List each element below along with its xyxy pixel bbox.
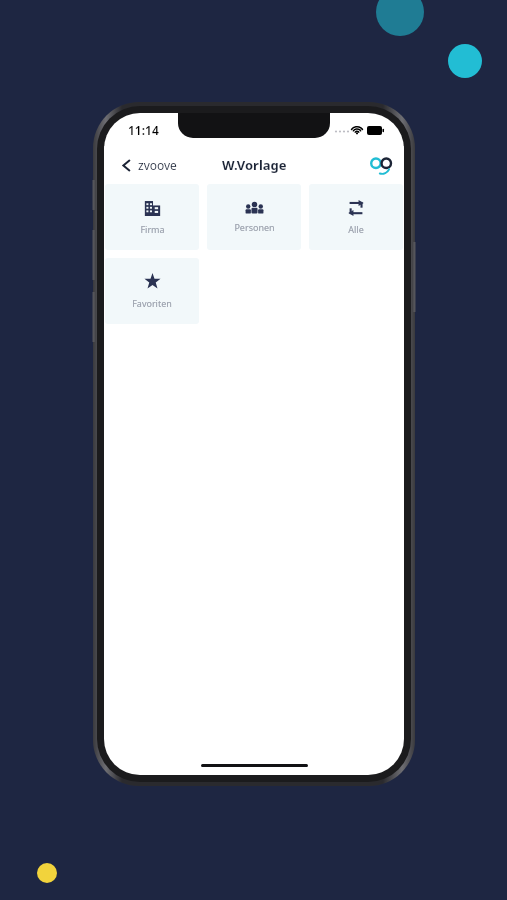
button[interactable]: Favoriten xyxy=(105,258,199,324)
button[interactable]: Alle xyxy=(309,184,403,250)
button[interactable]: zvoove logo xyxy=(368,152,394,178)
button[interactable]: Personen xyxy=(207,184,301,250)
staticText: Personen xyxy=(234,221,275,233)
staticText: Alle xyxy=(348,223,364,235)
staticText: zvoove xyxy=(138,157,177,173)
staticText: Favoriten xyxy=(132,297,172,309)
staticText: 11:14 xyxy=(128,122,159,138)
button[interactable]: Firma xyxy=(105,184,199,250)
button[interactable]: zvoove xyxy=(116,153,181,177)
staticText: W.Vorlage xyxy=(222,156,287,174)
staticText: Firma xyxy=(140,223,165,235)
